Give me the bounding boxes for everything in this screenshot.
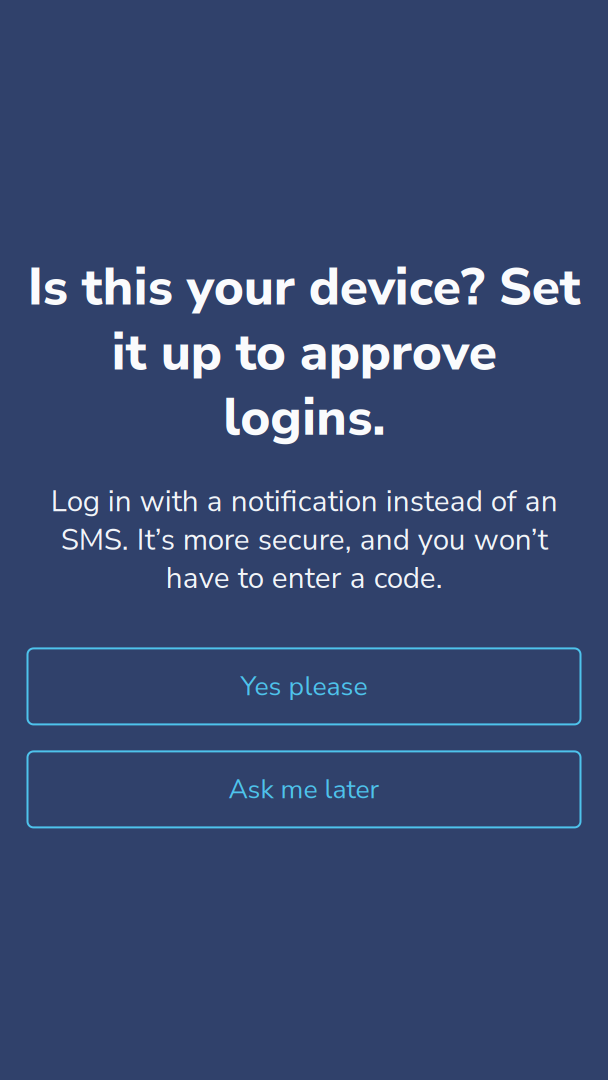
staticText: Yes please bbox=[240, 668, 367, 705]
button[interactable]: Ask me later bbox=[27, 751, 580, 827]
button[interactable]: Yes please bbox=[27, 648, 580, 724]
staticText: Is this your device? Set it up to approv… bbox=[27, 255, 580, 450]
staticText: Log in with a notification instead of an… bbox=[50, 482, 557, 597]
staticText: Ask me later bbox=[228, 771, 379, 808]
